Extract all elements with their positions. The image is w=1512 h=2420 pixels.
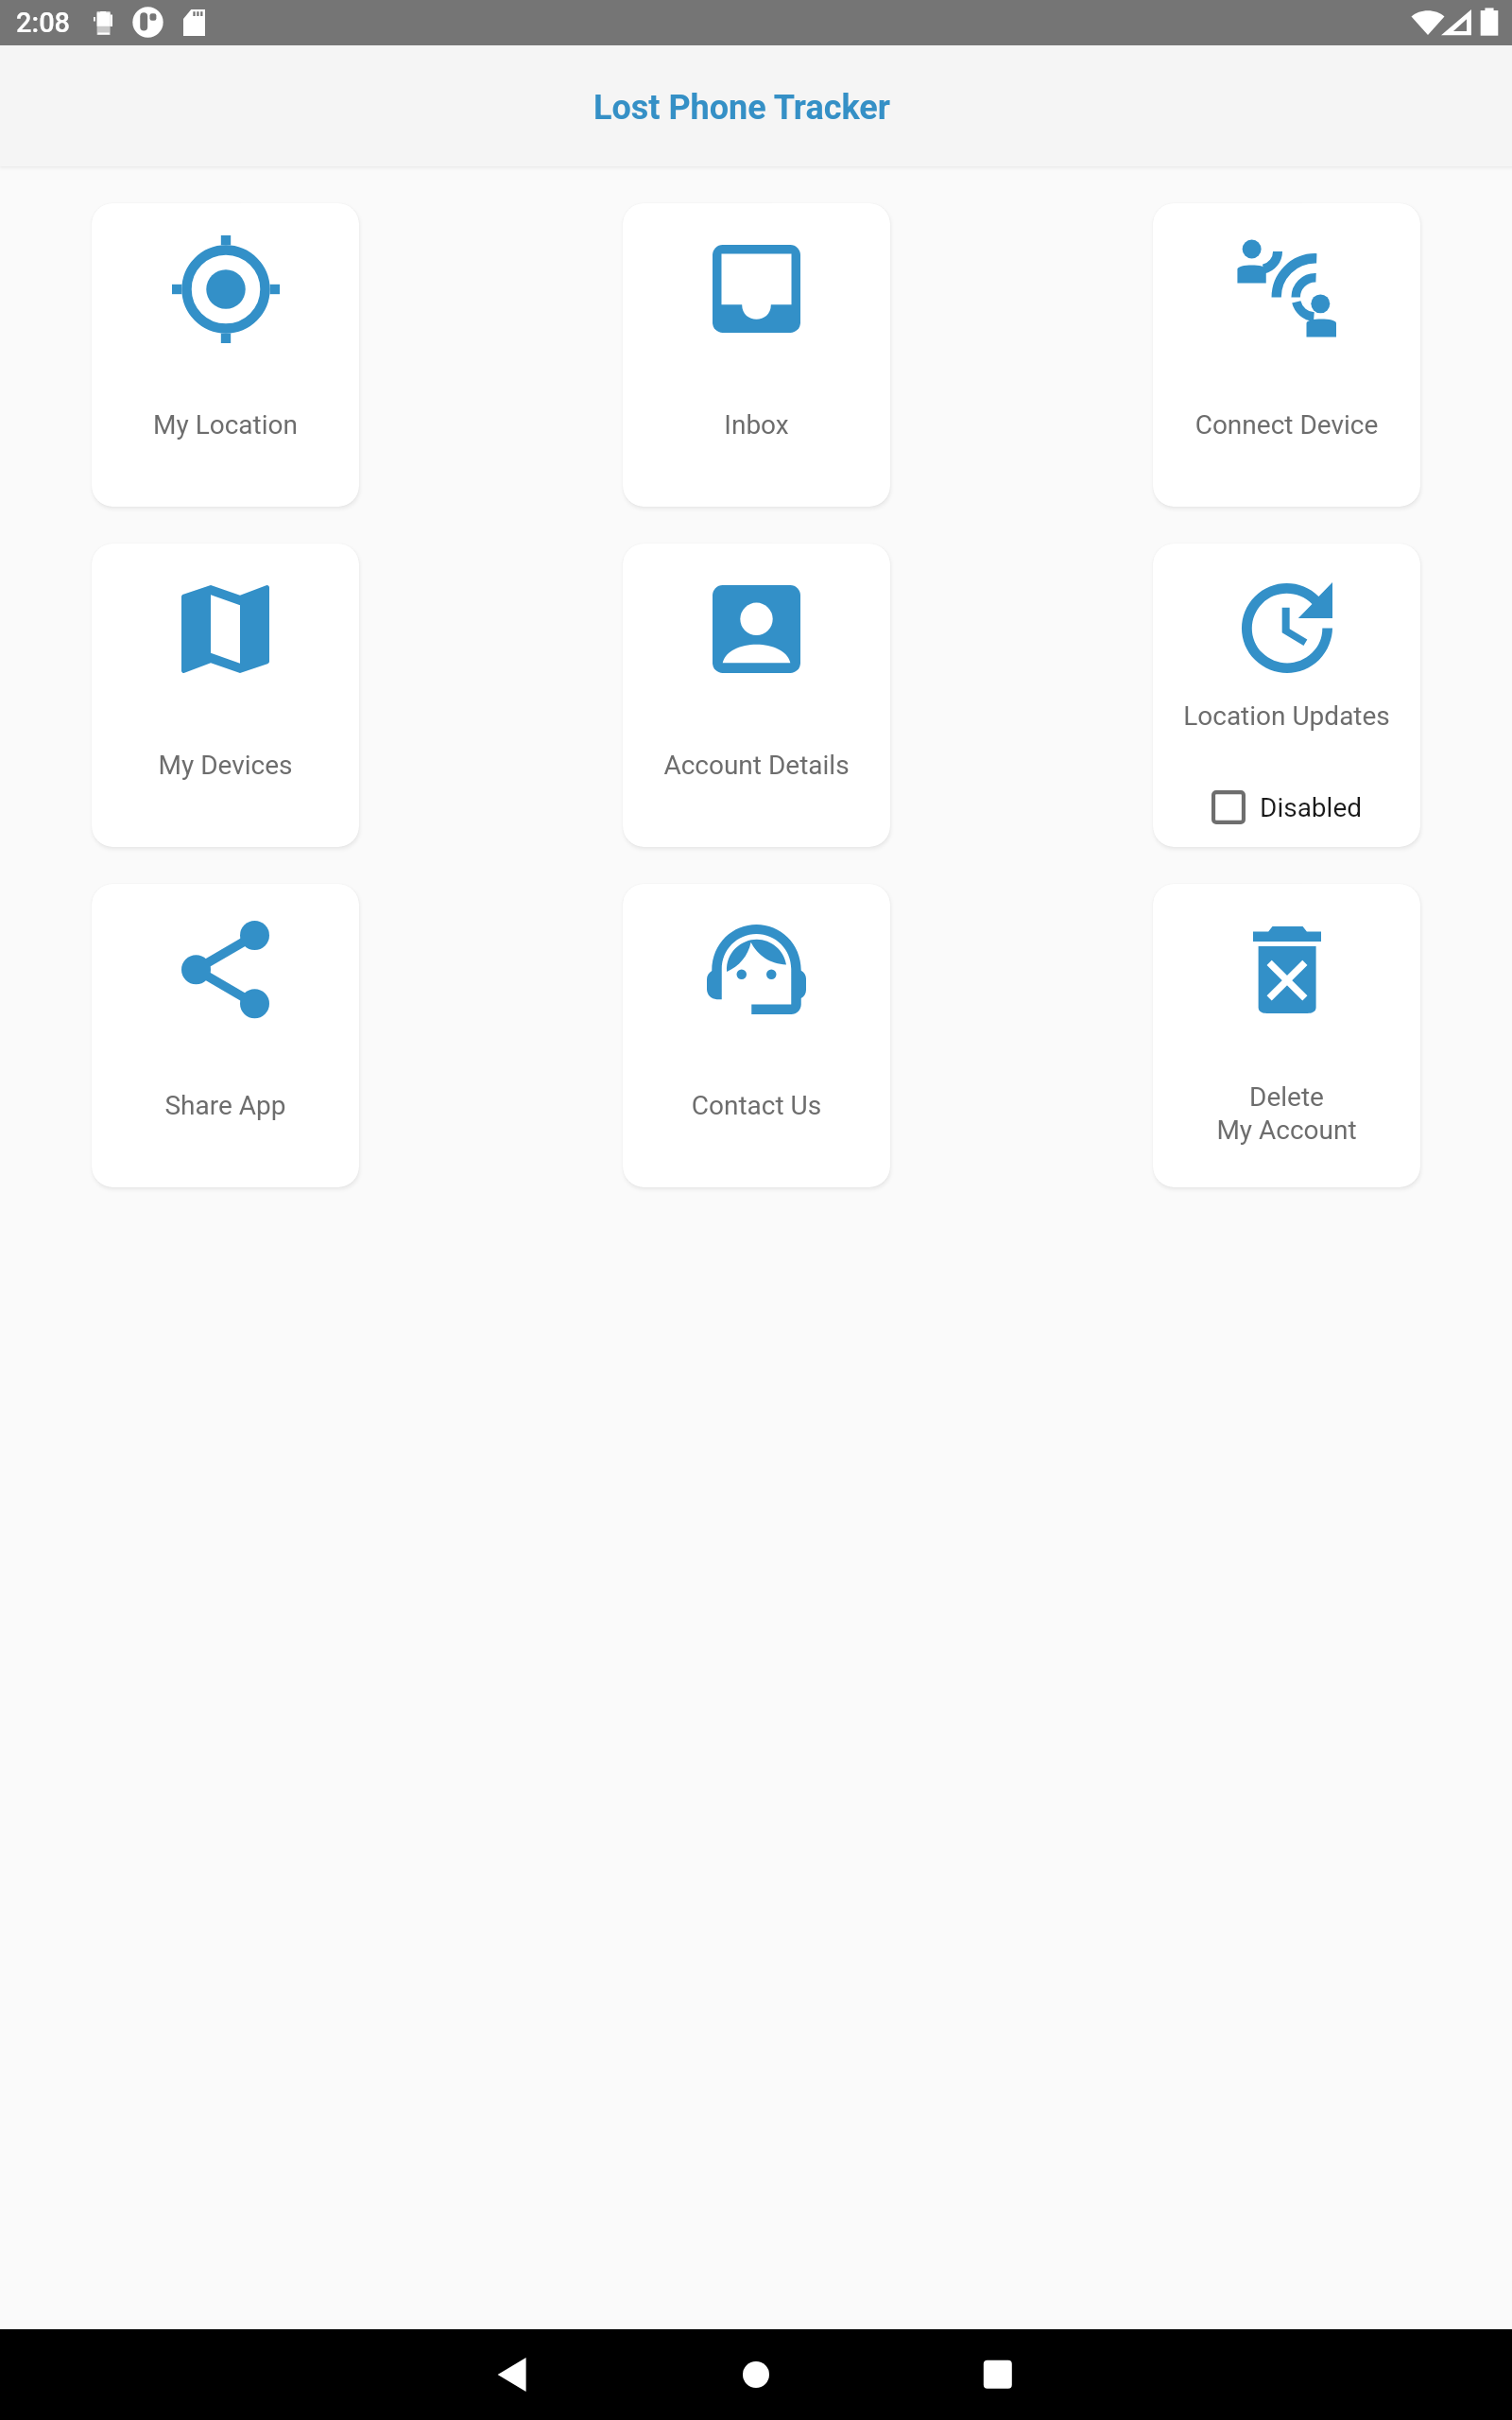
button[interactable]: Disabled: [1211, 790, 1363, 824]
staticText: Location Updates: [1153, 700, 1420, 732]
staticText: 2:08: [16, 7, 71, 39]
staticText: Inbox: [623, 409, 890, 441]
staticText: My Location: [92, 409, 359, 441]
staticText: Share App: [92, 1090, 359, 1121]
button[interactable]: Recent apps: [960, 2337, 1036, 2412]
button[interactable]: Location Updates: [1153, 544, 1420, 847]
button[interactable]: Connect Device: [1153, 203, 1420, 507]
button[interactable]: My Devices: [92, 544, 359, 847]
button[interactable]: Back: [477, 2337, 553, 2412]
staticText: My Devices: [92, 750, 359, 781]
button[interactable]: Delete My Account: [1153, 884, 1420, 1187]
button[interactable]: Share App: [92, 884, 359, 1187]
button[interactable]: Contact Us: [623, 884, 890, 1187]
button[interactable]: Account Details: [623, 544, 890, 847]
staticText: Disabled: [1260, 792, 1363, 823]
staticText: Account Details: [623, 750, 890, 781]
button[interactable]: Home: [718, 2337, 794, 2412]
button[interactable]: My Location: [92, 203, 359, 507]
staticText: Delete My Account: [1153, 1081, 1420, 1146]
staticText: Connect Device: [1153, 409, 1420, 441]
staticText: Lost Phone Tracker: [593, 88, 890, 128]
button[interactable]: Inbox: [623, 203, 890, 507]
staticText: Contact Us: [623, 1090, 890, 1121]
